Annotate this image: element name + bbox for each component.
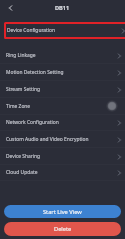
staticText: Stream Setting xyxy=(6,86,40,93)
button[interactable]: Delete xyxy=(4,222,121,236)
staticText: DB11 xyxy=(55,4,70,12)
staticText: Network Configuration xyxy=(6,119,59,126)
staticText: Custom Audio and Video Encryption xyxy=(6,136,89,143)
staticText: Ring Linkage xyxy=(6,52,36,59)
button[interactable]: Network Configuration xyxy=(0,114,125,131)
button[interactable]: Custom Audio and Video Encryption xyxy=(0,131,125,148)
staticText: Time Zone xyxy=(6,103,31,110)
staticText: Device Configuration xyxy=(7,27,56,34)
button[interactable]: Ring Linkage xyxy=(0,47,125,64)
button[interactable]: Back xyxy=(6,3,16,13)
staticText: Device Sharing xyxy=(6,153,41,160)
button[interactable]: Time Zone xyxy=(0,98,125,115)
staticText: Motion Detection Setting xyxy=(6,69,64,76)
button[interactable]: Start Live View xyxy=(4,205,121,218)
staticText: Delete xyxy=(54,225,72,233)
staticText: Start Live View xyxy=(43,208,82,216)
button[interactable]: Device Configuration xyxy=(4,22,125,39)
button[interactable]: Stream Setting xyxy=(0,81,125,98)
button[interactable]: Motion Detection Setting xyxy=(0,64,125,81)
staticText: Cloud Update xyxy=(6,169,38,176)
button[interactable]: Cloud Update xyxy=(0,164,125,181)
button[interactable]: Device Sharing xyxy=(0,148,125,165)
